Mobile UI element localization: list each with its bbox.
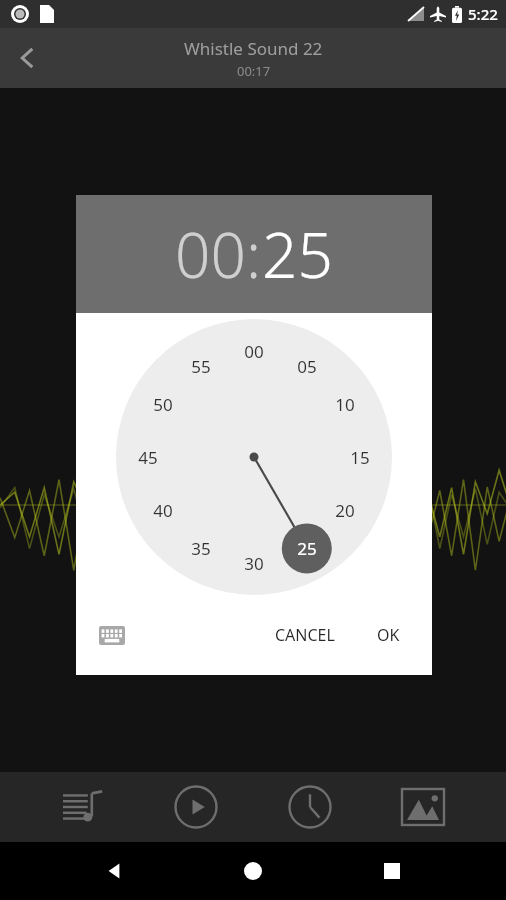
button[interactable]: Playlist xyxy=(53,777,113,837)
button[interactable]: Gallery xyxy=(393,777,453,837)
button[interactable]: Home xyxy=(229,847,277,895)
button[interactable]: 00 xyxy=(175,212,246,296)
staticText: 5:22 xyxy=(468,4,498,24)
staticText: 45 xyxy=(138,446,158,469)
button[interactable]: Back xyxy=(0,30,56,86)
staticText: 00:17 xyxy=(237,62,271,80)
button[interactable]: Play xyxy=(166,777,226,837)
button[interactable]: CANCEL xyxy=(261,614,349,656)
staticText: : xyxy=(246,212,262,296)
staticText: OK xyxy=(377,624,400,646)
button[interactable]: 25 xyxy=(262,212,333,296)
button[interactable]: Timer xyxy=(280,777,340,837)
button[interactable]: Minute picker clock face xyxy=(116,319,392,595)
staticText: Whistle Sound 22 xyxy=(184,37,323,60)
staticText: 40 xyxy=(153,499,173,522)
button[interactable]: OK xyxy=(363,614,414,656)
staticText: 20 xyxy=(335,499,355,522)
button[interactable]: Back xyxy=(91,847,139,895)
staticText: 00 xyxy=(244,340,264,363)
staticText: 25 xyxy=(297,537,317,560)
staticText: 05 xyxy=(297,355,317,378)
staticText: 30 xyxy=(244,552,264,575)
staticText: 50 xyxy=(153,393,173,416)
staticText: 15 xyxy=(350,446,370,469)
button[interactable]: Recent apps xyxy=(368,847,416,895)
staticText: 35 xyxy=(191,537,211,560)
staticText: CANCEL xyxy=(275,624,335,646)
button[interactable]: Switch to keyboard input xyxy=(90,613,134,657)
staticText: 10 xyxy=(335,393,355,416)
staticText: 55 xyxy=(191,355,211,378)
